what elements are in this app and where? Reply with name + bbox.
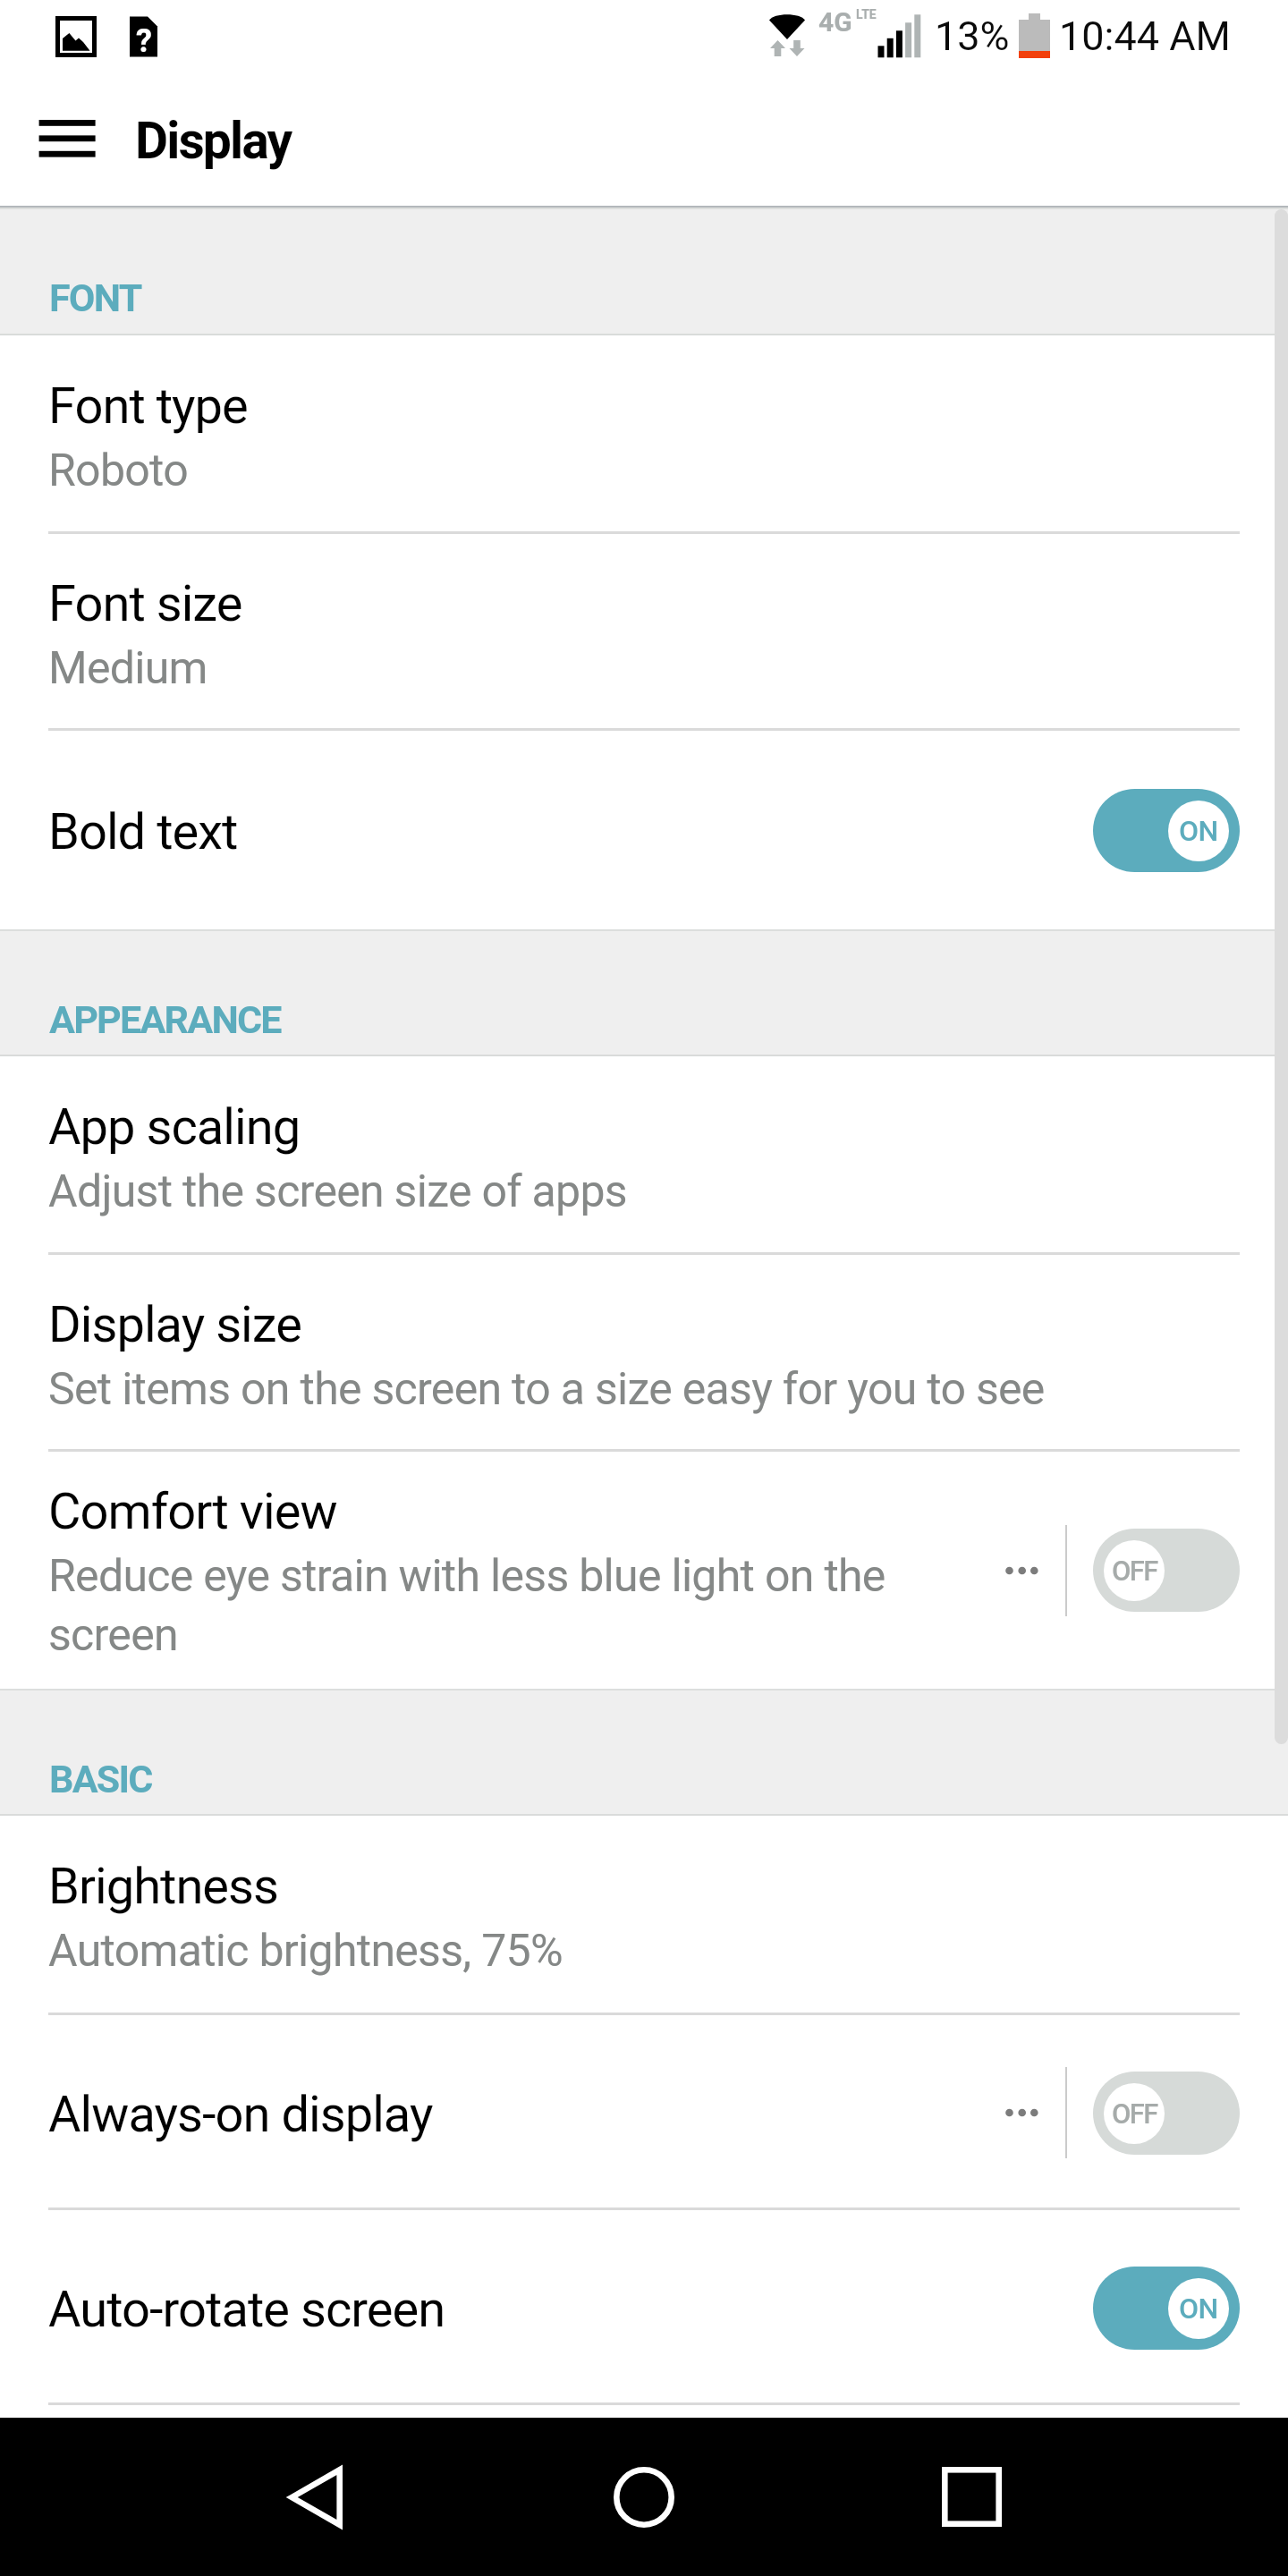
button[interactable]: App scaling <box>0 1056 1288 1255</box>
button[interactable]: Brightness <box>0 1816 1288 2015</box>
staticText: Adjust the screen size of apps <box>48 1160 627 1219</box>
button[interactable]: More options <box>978 2063 1063 2162</box>
staticText: Font type <box>48 372 248 436</box>
staticText: Set items on the screen to a size easy f… <box>48 1358 1045 1417</box>
staticText: Always-on display <box>48 2080 433 2145</box>
button[interactable]: Switch on <box>1093 789 1240 872</box>
staticText: Display <box>135 109 292 172</box>
staticText: Font size <box>48 570 242 634</box>
button[interactable]: More options <box>978 1521 1063 1620</box>
button[interactable]: Switch on <box>1093 2267 1240 2350</box>
staticText: 10:44 AM <box>1059 13 1231 60</box>
button[interactable]: Font size <box>0 534 1288 731</box>
staticText: Roboto <box>48 439 189 498</box>
staticText: OFF <box>1112 2097 1157 2130</box>
button[interactable]: Menu <box>9 87 125 203</box>
staticText: FONT <box>49 272 141 322</box>
staticText: Comfort view <box>48 1478 337 1542</box>
button[interactable]: Display size <box>0 1255 1288 1452</box>
button[interactable]: Home <box>563 2418 724 2576</box>
staticText: Reduce eye strain with less blue light o… <box>48 1545 885 1663</box>
button[interactable]: Font type <box>0 335 1288 534</box>
staticText: Display size <box>48 1291 301 1355</box>
staticText: ON <box>1179 814 1218 848</box>
staticText: BASIC <box>49 1753 152 1803</box>
staticText: Brightness <box>48 1852 279 1917</box>
staticText: Bold text <box>48 798 238 862</box>
staticText: 4G <box>818 6 852 38</box>
staticText: App scaling <box>48 1093 301 1157</box>
staticText: ON <box>1179 2292 1218 2326</box>
button[interactable]: Back <box>235 2418 396 2576</box>
button[interactable]: Auto-rotate screen <box>0 2210 1288 2405</box>
staticText: OFF <box>1112 1555 1157 1587</box>
button[interactable]: Switch off <box>1093 2072 1240 2155</box>
staticText: Medium <box>48 637 208 696</box>
staticText: LTE <box>856 7 877 21</box>
staticText: 13% <box>935 13 1010 60</box>
staticText: Automatic brightness, 75% <box>48 1919 563 1979</box>
staticText: APPEARANCE <box>49 994 281 1044</box>
button[interactable]: Switch off <box>1093 1529 1240 1612</box>
staticText: ? <box>136 22 152 60</box>
button[interactable]: Bold text <box>0 731 1288 929</box>
button[interactable]: Always-on display <box>0 2015 1288 2210</box>
staticText: Auto-rotate screen <box>48 2275 445 2340</box>
button[interactable]: Comfort view <box>0 1452 1288 1689</box>
button[interactable]: Recent apps <box>891 2418 1052 2576</box>
